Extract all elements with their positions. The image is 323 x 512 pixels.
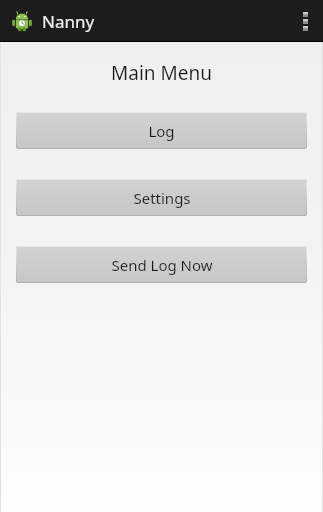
staticText: Main Menu	[111, 60, 212, 86]
button[interactable]: Log	[16, 112, 307, 149]
button[interactable]: Send Log Now	[16, 246, 307, 283]
other: App icon	[11, 10, 33, 32]
staticText: Nanny	[42, 10, 95, 33]
staticText: Settings	[133, 188, 191, 208]
staticText: Send Log Now	[111, 255, 213, 275]
button[interactable]: Settings	[16, 179, 307, 216]
staticText: Log	[148, 121, 175, 141]
button[interactable]: More options	[287, 0, 323, 42]
